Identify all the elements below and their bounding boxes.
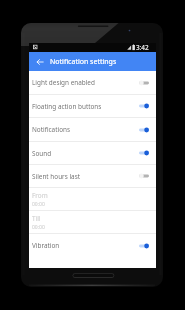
- staticText: Floating action buttons: [32, 102, 139, 111]
- staticText: Light design enabled: [32, 78, 139, 87]
- staticText: 3:42: [136, 43, 149, 52]
- button[interactable]: Notifications: [29, 118, 156, 141]
- button[interactable]: Till: [29, 211, 156, 233]
- staticText: Sound: [32, 149, 139, 158]
- button[interactable]: Sound: [29, 142, 156, 164]
- staticText: Vibration: [32, 241, 139, 250]
- staticText: Notification settings: [50, 57, 117, 67]
- staticText: From: [32, 191, 48, 200]
- staticText: 00:00: [32, 201, 45, 208]
- button[interactable]: Light design enabled: [29, 71, 156, 94]
- button[interactable]: From: [29, 188, 156, 210]
- button[interactable]: Floating action buttons: [29, 95, 156, 117]
- staticText: Till: [32, 214, 41, 223]
- button[interactable]: Silent hours last: [29, 165, 156, 187]
- staticText: Silent hours last: [32, 172, 139, 181]
- staticText: Notifications: [32, 125, 139, 134]
- staticText: 00:00: [32, 224, 45, 231]
- button[interactable]: Vibration: [29, 234, 156, 257]
- button[interactable]: Back: [29, 52, 50, 71]
